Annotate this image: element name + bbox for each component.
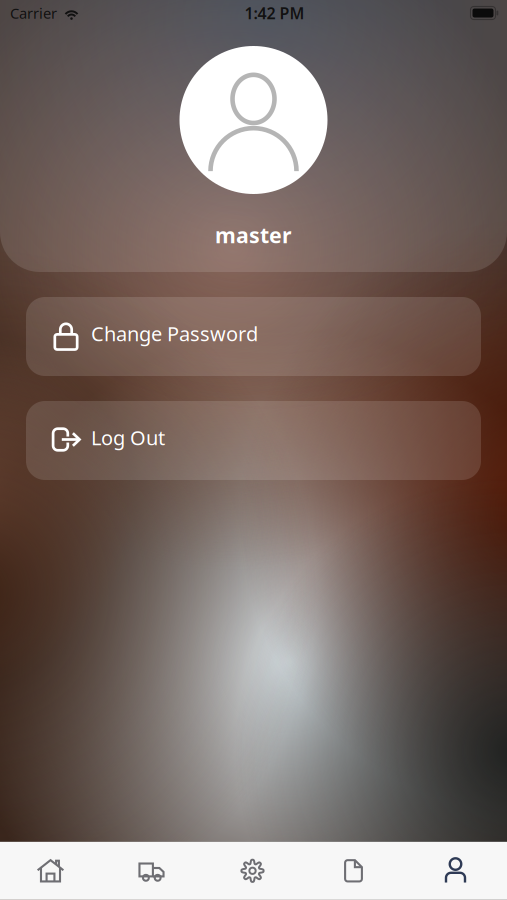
button[interactable]: Settings bbox=[202, 842, 303, 900]
staticText: master bbox=[215, 221, 292, 249]
button[interactable]: Change Password bbox=[26, 297, 481, 376]
button[interactable]: Home bbox=[0, 842, 101, 900]
staticText: 1:42 PM bbox=[244, 2, 304, 24]
staticText: Log Out bbox=[91, 424, 165, 451]
button[interactable]: Log Out bbox=[26, 401, 481, 480]
staticText: Change Password bbox=[91, 320, 258, 347]
staticText: Carrier bbox=[10, 3, 57, 23]
button[interactable]: Documents bbox=[303, 842, 404, 900]
button[interactable]: Profile bbox=[404, 842, 507, 900]
button[interactable]: Deliveries bbox=[101, 842, 202, 900]
